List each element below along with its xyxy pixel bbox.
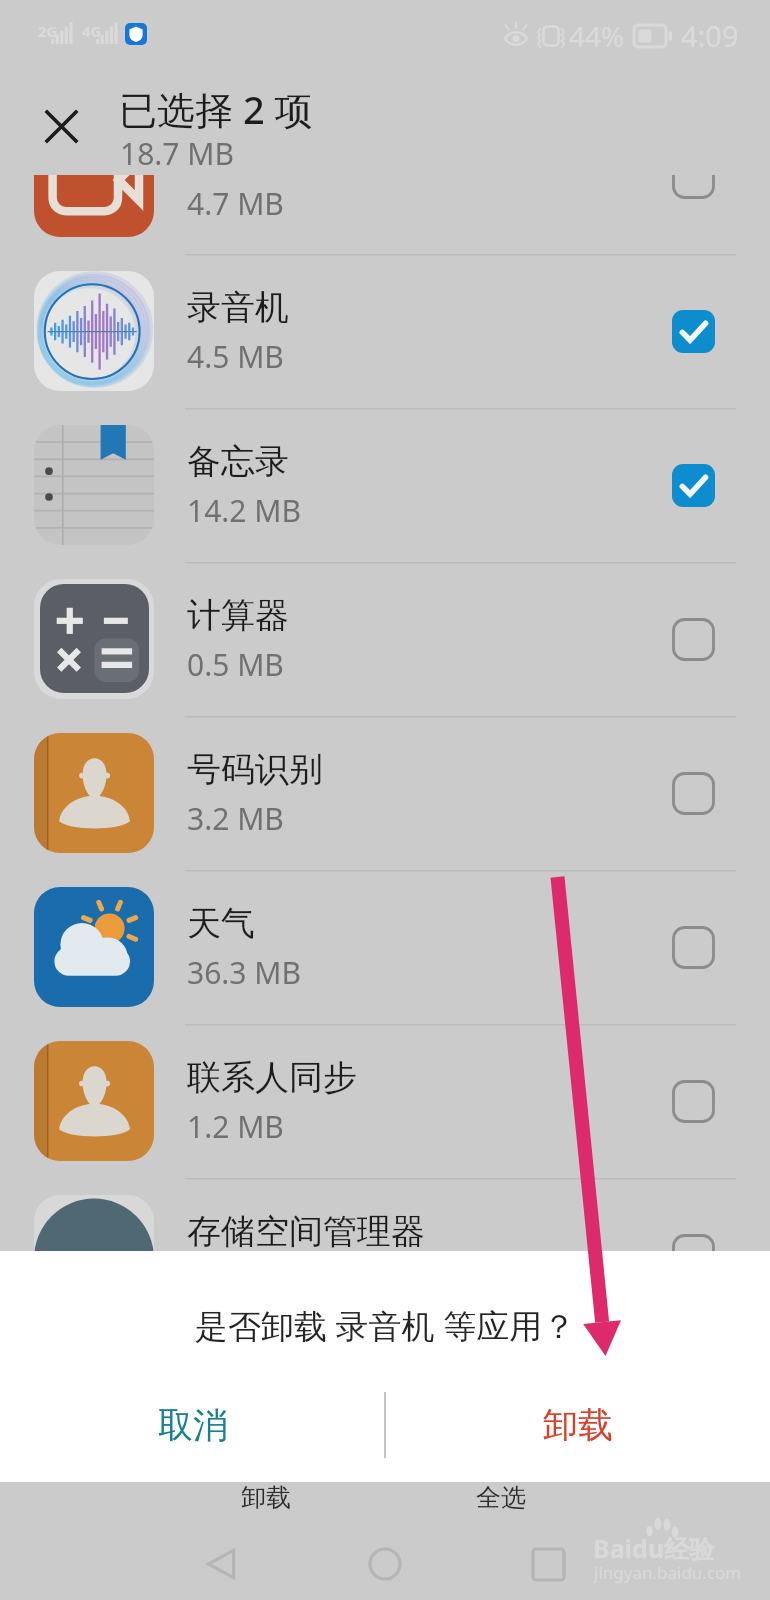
staticText: 卸载 <box>543 1403 613 1447</box>
button[interactable]: Recents <box>516 1528 580 1600</box>
button[interactable]: Select app <box>638 1178 748 1332</box>
button[interactable]: 天气 <box>0 870 770 1024</box>
button[interactable]: Select app <box>638 716 748 870</box>
staticText: 全选 <box>476 1482 526 1513</box>
button[interactable]: 4.7 MB <box>0 100 770 254</box>
staticText: 录音机 <box>187 286 289 329</box>
button[interactable]: Home <box>353 1528 417 1600</box>
staticText: 2G <box>38 21 58 41</box>
button[interactable]: Back <box>189 1528 253 1600</box>
staticText: 计算器 <box>187 594 289 637</box>
staticText: 4.7 MB <box>187 183 284 224</box>
staticText <box>187 130 196 176</box>
staticText: 4:09 <box>681 16 739 55</box>
button[interactable]: Select app <box>638 562 748 716</box>
button[interactable]: Select app <box>638 408 748 562</box>
staticText: 4.5 MB <box>187 336 284 377</box>
staticText: 3.2 MB <box>187 798 284 839</box>
staticText: 14.2 MB <box>187 490 302 531</box>
button[interactable]: 卸载 <box>196 1474 336 1520</box>
staticText: 4G <box>82 21 102 41</box>
button[interactable]: 取消 <box>0 1375 385 1475</box>
staticText: 天气 <box>187 902 255 945</box>
staticText: 是否卸载 录音机 等应用？ <box>195 1303 576 1348</box>
button[interactable]: 联系人同步 <box>0 1024 770 1178</box>
staticText: 已选择 2 项 <box>119 83 313 135</box>
button[interactable]: 存储空间管理器 <box>0 1178 770 1332</box>
button[interactable]: 卸载 <box>385 1375 770 1475</box>
staticText: 44% <box>569 17 625 55</box>
staticText: 存储空间管理器 <box>187 1210 425 1253</box>
button[interactable]: Select app <box>638 870 748 1024</box>
staticText: 18.7 MB <box>120 133 235 174</box>
button[interactable]: Close <box>27 92 95 160</box>
button[interactable]: 录音机 <box>0 254 770 408</box>
button[interactable]: Select app <box>638 100 748 254</box>
button[interactable]: Select app <box>638 1024 748 1178</box>
button[interactable]: 备忘录 <box>0 408 770 562</box>
button[interactable]: 号码识别 <box>0 716 770 870</box>
button[interactable]: 全选 <box>431 1474 571 1520</box>
staticText: jingyan.baidu.com <box>594 1561 742 1584</box>
staticText: 号码识别 <box>187 748 323 791</box>
staticText: 36.3 MB <box>187 952 302 993</box>
button[interactable]: 计算器 <box>0 562 770 716</box>
staticText: 联系人同步 <box>187 1056 357 1099</box>
staticText: 卸载 <box>241 1482 291 1513</box>
staticText: 0.5 MB <box>187 644 284 685</box>
staticText: 1.2 MB <box>187 1106 284 1147</box>
staticText: 备忘录 <box>187 440 289 483</box>
button[interactable]: Select app <box>638 254 748 408</box>
staticText: 取消 <box>158 1403 228 1447</box>
staticText: Baidu经验 <box>593 1531 715 1565</box>
